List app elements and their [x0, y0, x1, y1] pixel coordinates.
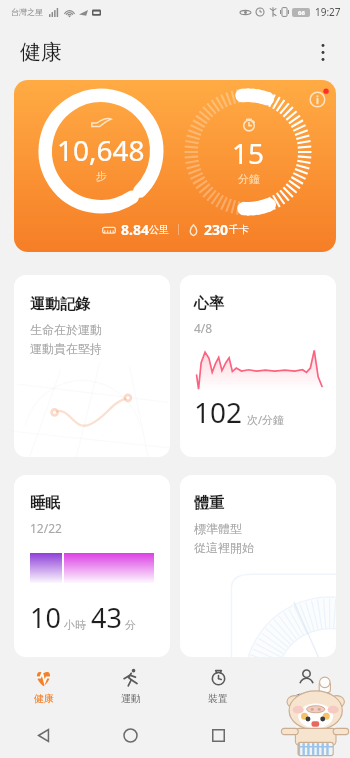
button[interactable]: Home: [87, 712, 174, 758]
staticText: 4/8: [194, 320, 213, 336]
staticText: 15: [232, 134, 265, 172]
staticText: 8.84: [121, 220, 149, 239]
button[interactable]: More options: [303, 32, 343, 72]
staticText: 台灣之星: [11, 7, 43, 17]
staticText: 我的: [296, 692, 316, 705]
staticText: 千卡: [229, 223, 249, 236]
staticText: 10: [30, 599, 61, 636]
staticText: 標準體型: [194, 521, 242, 536]
staticText: 10,648: [57, 131, 145, 169]
button[interactable]: Back: [0, 712, 87, 758]
staticText: 分: [125, 618, 136, 632]
button[interactable]: 運動: [87, 660, 174, 712]
staticText: 運動記錄: [30, 295, 90, 314]
button[interactable]: 裝置: [174, 660, 262, 712]
staticText: 運動: [121, 692, 141, 705]
staticText: 公里: [149, 223, 169, 236]
staticText: 從這裡開始: [194, 540, 254, 555]
staticText: 睡眠: [30, 494, 60, 513]
staticText: 生命在於運動: [30, 322, 102, 337]
staticText: 102: [194, 393, 243, 431]
staticText: 66: [298, 9, 305, 17]
button[interactable]: Recent apps: [174, 712, 262, 758]
staticText: 裝置: [208, 692, 228, 705]
staticText: 健康: [34, 692, 54, 705]
button[interactable]: 我的: [262, 660, 350, 712]
staticText: 次/分鐘: [247, 412, 285, 427]
staticText: 43: [91, 599, 122, 636]
staticText: 19:27: [315, 5, 341, 19]
staticText: 分鐘: [238, 172, 260, 186]
button[interactable]: Info: [305, 85, 331, 111]
button[interactable]: 體重: [180, 475, 336, 657]
staticText: 健康: [20, 39, 62, 65]
button[interactable]: 睡眠: [14, 475, 170, 657]
button[interactable]: 健康: [0, 660, 87, 712]
staticText: 運動貴在堅持: [30, 341, 102, 356]
button[interactable]: Info: [14, 80, 336, 252]
staticText: 12/22: [30, 520, 62, 536]
staticText: 小時: [64, 618, 86, 632]
button[interactable]: 心率: [180, 275, 336, 457]
staticText: 心率: [194, 294, 224, 313]
staticText: 230: [204, 220, 229, 239]
button[interactable]: 運動記錄: [14, 275, 170, 457]
staticText: 步: [96, 169, 107, 183]
staticText: 體重: [194, 494, 224, 513]
